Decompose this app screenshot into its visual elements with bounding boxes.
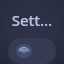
staticText: Settings bbox=[10, 10, 54, 30]
button[interactable]: Connectivity bbox=[8, 38, 56, 64]
other: Connectivity bbox=[19, 46, 29, 56]
button[interactable]: Settings bbox=[10, 10, 54, 30]
